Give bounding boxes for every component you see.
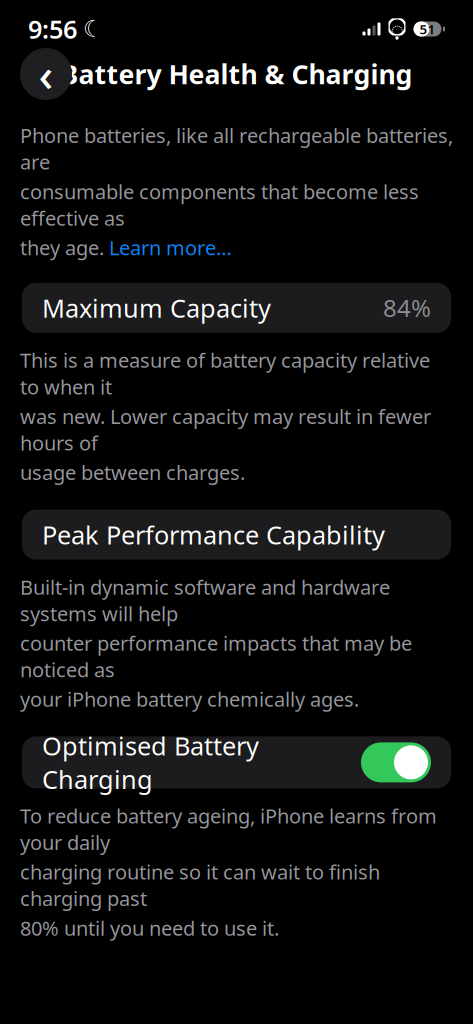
button[interactable]: Maximum Capacity — [22, 283, 451, 333]
staticText: To reduce battery ageing, iPhone learns … — [20, 802, 437, 855]
staticText: they age. — [20, 234, 109, 261]
staticText: usage between charges. — [20, 459, 245, 486]
staticText: Learn more… — [109, 234, 232, 261]
staticText: Optimised Battery Charging — [42, 729, 259, 796]
staticText: your iPhone battery chemically ages. — [20, 686, 359, 712]
staticText: Maximum Capacity — [42, 291, 271, 325]
button[interactable]: Peak Performance Capability — [22, 510, 451, 560]
button[interactable]: Optimised Battery Charging — [22, 736, 451, 788]
staticText: was new. Lower capacity may result in fe… — [20, 403, 431, 456]
staticText: 51 — [419, 20, 435, 38]
staticText: 80% until you need to use it. — [20, 915, 279, 941]
staticText: consumable components that become less e… — [20, 178, 419, 231]
staticText: counter performance impacts that may be … — [20, 630, 412, 683]
button[interactable]: Back — [20, 44, 72, 104]
staticText: Peak Performance Capability — [42, 518, 385, 551]
staticText: This is a measure of battery capacity re… — [20, 347, 430, 400]
staticText: Phone batteries, like all rechargeable b… — [20, 122, 453, 175]
staticText: ‹ — [38, 44, 53, 104]
staticText: 9:56 — [28, 12, 77, 46]
staticText: 84% — [383, 292, 431, 324]
button[interactable]: Learn more… — [109, 234, 232, 261]
staticText: ◌ — [390, 14, 403, 44]
staticText: ☾ — [83, 16, 103, 42]
staticText: charging routine so it can wait to finis… — [20, 858, 380, 912]
staticText: Built-in dynamic software and hardware s… — [20, 574, 390, 627]
staticText: Battery Health & Charging — [60, 56, 412, 92]
